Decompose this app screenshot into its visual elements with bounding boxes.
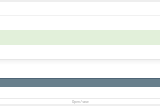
button[interactable]: Profile bbox=[107, 78, 160, 87]
staticText: Open / save bbox=[72, 100, 89, 104]
button[interactable]: Open / save bbox=[0, 99, 160, 104]
button[interactable]: Home bbox=[0, 78, 54, 87]
button[interactable]: Search bbox=[54, 78, 107, 87]
